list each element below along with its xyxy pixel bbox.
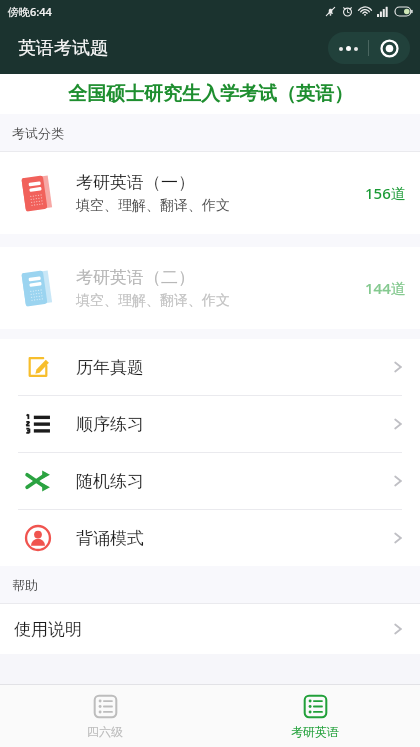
button[interactable]: 随机练习 — [0, 453, 420, 509]
staticText: 填空、理解、翻译、作文 — [76, 197, 230, 215]
staticText: 使用说明 — [14, 619, 394, 640]
button[interactable]: Close — [369, 32, 410, 64]
staticText: 156道 — [365, 183, 406, 203]
button[interactable]: 考研英语（一） — [0, 152, 420, 234]
staticText: 144道 — [365, 278, 406, 298]
button[interactable]: 四六级 — [0, 685, 210, 747]
staticText: 全国硕士研究生入学考试（英语） — [68, 82, 353, 106]
staticText: 考研英语 — [291, 724, 339, 739]
staticText: 随机练习 — [76, 471, 394, 492]
button[interactable]: More — [328, 32, 368, 64]
button[interactable]: 背诵模式 — [0, 510, 420, 566]
staticText: 帮助 — [12, 577, 38, 593]
button[interactable]: 顺序练习 — [0, 396, 420, 452]
button[interactable]: 历年真题 — [0, 339, 420, 395]
staticText: 英语考试题 — [18, 37, 108, 60]
staticText: 顺序练习 — [76, 414, 394, 435]
staticText: 考研英语（二） — [76, 267, 195, 288]
staticText: 四六级 — [87, 724, 123, 739]
staticText: 填空、理解、翻译、作文 — [76, 292, 230, 310]
staticText: 考研英语（一） — [76, 172, 195, 193]
button[interactable]: 考研英语 — [210, 685, 420, 747]
staticText: 考试分类 — [12, 125, 64, 141]
button[interactable]: 使用说明 — [0, 604, 420, 654]
staticText: 历年真题 — [76, 357, 394, 378]
staticText: 傍晚6:44 — [8, 4, 52, 19]
button[interactable]: 考研英语（二） — [0, 247, 420, 329]
staticText: 背诵模式 — [76, 528, 394, 549]
